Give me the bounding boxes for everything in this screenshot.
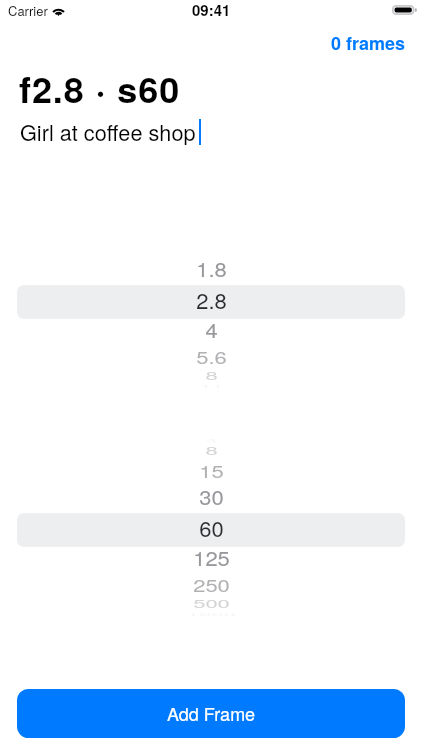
other: Wi-Fi	[51, 5, 66, 16]
staticText: 500	[193, 596, 230, 612]
staticText: 60	[199, 512, 224, 544]
staticText: Carrier	[8, 1, 48, 20]
staticText: 30	[199, 482, 224, 512]
staticText: Girl at coffee shop	[20, 116, 196, 147]
staticText: 250	[193, 573, 230, 597]
staticText: 1.8	[196, 254, 227, 284]
staticText: 5.6	[196, 345, 227, 369]
other: Battery	[392, 5, 417, 15]
staticText: 0 frames	[331, 30, 406, 56]
staticText: 15	[199, 459, 224, 483]
staticText: 8	[205, 368, 218, 384]
button[interactable]: Add Frame	[17, 689, 405, 738]
staticText: 8	[205, 443, 218, 459]
staticText: 2.8	[196, 284, 227, 316]
button[interactable]	[17, 285, 405, 319]
staticText: 09:41	[192, 0, 231, 20]
staticText: f2.8 · s60	[19, 62, 181, 114]
staticText: 4	[205, 315, 218, 345]
button[interactable]: 0 frames	[331, 30, 406, 56]
button[interactable]	[17, 513, 405, 547]
staticText: 125	[193, 543, 230, 573]
staticText: Add Frame	[167, 700, 256, 726]
